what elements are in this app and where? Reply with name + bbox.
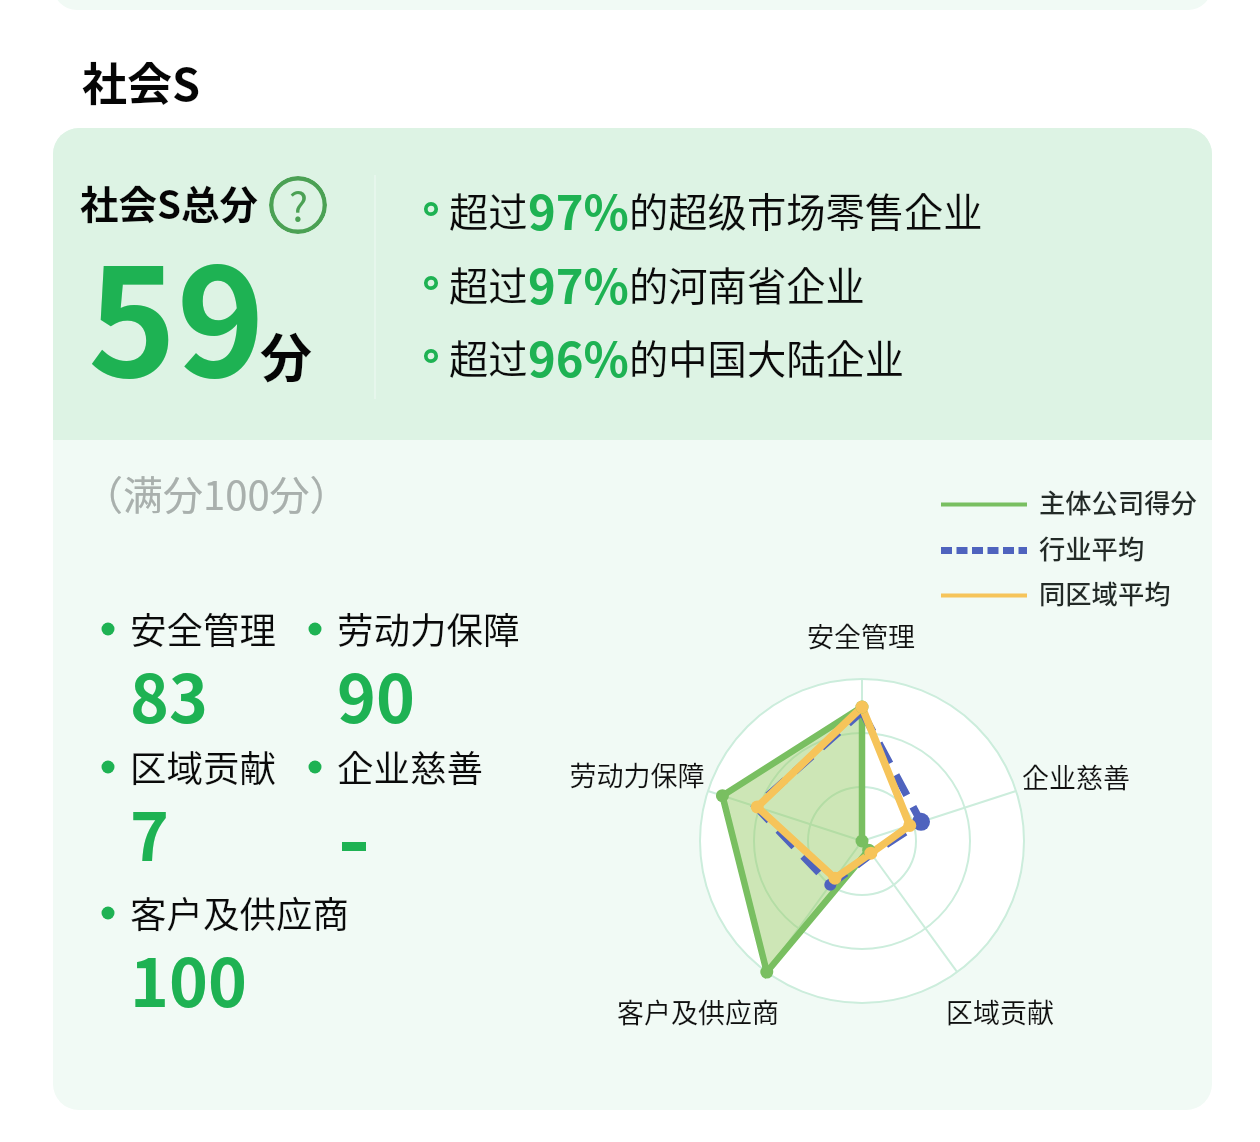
staticText: 客户及供应商 (130, 886, 349, 939)
staticText: 行业平均 (1039, 528, 1145, 566)
staticText: 97% (528, 175, 629, 243)
staticText: 97% (528, 249, 629, 317)
staticText: 社会S (82, 49, 201, 114)
staticText: 96% (528, 322, 629, 390)
staticText: 7 (130, 784, 169, 880)
button[interactable]: 企业慈善 (308, 740, 483, 793)
button[interactable]: 区域贡献 (101, 740, 276, 836)
staticText: 59 (88, 203, 266, 420)
staticText: 超过 (449, 181, 528, 238)
staticText: 社会S总分 (80, 174, 259, 230)
staticText: 区域贡献 (130, 740, 276, 793)
staticText: 的超级市场零售企业 (629, 181, 983, 238)
staticText: 主体公司得分 (1039, 482, 1197, 520)
button[interactable]: 劳动力保障 (308, 602, 520, 698)
button[interactable]: 安全管理 (101, 602, 276, 698)
staticText: 的河南省企业 (629, 255, 865, 312)
button[interactable]: 主体公司得分 (941, 482, 1197, 520)
staticText: ? (289, 176, 308, 233)
button[interactable]: 客户及供应商 (101, 886, 349, 982)
staticText: 同区域平均 (1039, 573, 1171, 611)
staticText: 劳动力保障 (337, 602, 520, 655)
staticText: 的中国大陆企业 (629, 328, 905, 385)
button[interactable]: 同区域平均 (941, 573, 1171, 611)
staticText: 分 (260, 317, 313, 392)
button[interactable]: 社会S总分说明 (269, 176, 327, 234)
staticText: 超过 (449, 255, 528, 312)
staticText: 企业慈善 (337, 740, 483, 793)
staticText: 90 (337, 646, 415, 742)
staticText: 100 (130, 930, 247, 1026)
staticText: 安全管理 (130, 602, 276, 655)
staticText: 超过 (449, 328, 528, 385)
staticText: 83 (130, 646, 208, 742)
button[interactable]: 行业平均 (941, 528, 1145, 566)
staticText: （满分100分） (83, 464, 350, 522)
